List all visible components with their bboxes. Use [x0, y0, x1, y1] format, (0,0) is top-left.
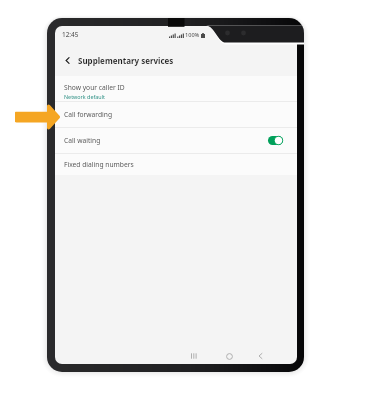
button[interactable]: Call forwarding	[55, 102, 297, 127]
staticText: Fixed dialing numbers	[64, 160, 134, 169]
staticText: Network default	[64, 93, 105, 100]
staticText: Show your caller ID	[64, 83, 125, 92]
button[interactable]: Recent apps	[188, 350, 200, 362]
button[interactable]: Back	[254, 350, 266, 362]
staticText: Supplementary services	[78, 55, 174, 66]
staticText: 100%	[185, 31, 200, 39]
button[interactable]: Home	[223, 350, 235, 362]
staticText: 12:45	[62, 30, 79, 39]
button[interactable]: Call waiting toggle	[268, 136, 283, 145]
button[interactable]: Call waiting	[55, 128, 297, 153]
staticText: Call forwarding	[64, 110, 112, 119]
button[interactable]: Show your caller ID	[55, 76, 297, 101]
button[interactable]: Back	[59, 52, 75, 68]
button[interactable]: Fixed dialing numbers	[55, 154, 297, 175]
staticText: Call waiting	[64, 136, 101, 145]
